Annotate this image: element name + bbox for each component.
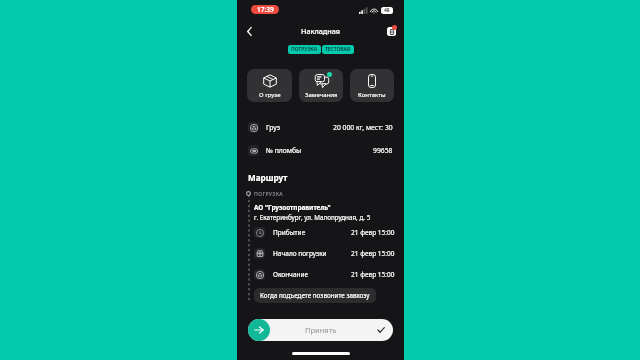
- staticText: Контакты: [358, 91, 386, 99]
- staticText: 17:39: [257, 5, 274, 14]
- staticText: 21 февр 15:00: [351, 270, 395, 279]
- staticText: 99658: [373, 146, 393, 155]
- button[interactable]: Прибытие: [237, 222, 404, 243]
- staticText: Когда подъедете позвоните завхозу: [260, 291, 370, 300]
- staticText: Начало погрузки: [273, 249, 327, 258]
- button[interactable]: Document: [384, 24, 398, 38]
- staticText: Накладная: [301, 26, 341, 36]
- button[interactable]: № пломбы: [237, 142, 404, 158]
- staticText: О грузе: [259, 91, 281, 99]
- staticText: Принять: [305, 325, 337, 335]
- button[interactable]: Swipe to accept: [248, 319, 270, 341]
- staticText: Прибытие: [273, 228, 306, 237]
- button[interactable]: Принять: [248, 319, 393, 341]
- button[interactable]: Окончание: [237, 264, 404, 285]
- staticText: 20 000 кг, мест: 30: [333, 123, 393, 132]
- button[interactable]: О грузе: [247, 69, 292, 102]
- staticText: Маршрут: [248, 172, 288, 183]
- staticText: 48: [384, 7, 390, 14]
- button[interactable]: Начало погрузки: [237, 243, 404, 264]
- staticText: 21 февр 15:00: [351, 249, 395, 258]
- staticText: Груз: [266, 123, 280, 132]
- staticText: 21 февр 15:00: [351, 228, 395, 237]
- button[interactable]: ПОГРУЗКА: [288, 45, 321, 54]
- staticText: ТЕСТОВАЯ: [325, 46, 351, 53]
- staticText: АО "Грузоотправитель": [254, 203, 331, 212]
- staticText: ПОГРУЗКА: [254, 190, 284, 197]
- button[interactable]: Груз: [237, 119, 404, 135]
- staticText: г. Екатеринбург, ул. Малопрудная, д. 5: [254, 213, 371, 222]
- button[interactable]: Замечания: [299, 69, 343, 102]
- button[interactable]: Контакты: [350, 69, 394, 102]
- staticText: № пломбы: [266, 146, 302, 155]
- staticText: Замечания: [305, 91, 338, 99]
- button[interactable]: ТЕСТОВАЯ: [322, 45, 354, 54]
- button[interactable]: Back: [242, 24, 256, 38]
- staticText: ПОГРУЗКА: [291, 46, 318, 53]
- staticText: Окончание: [273, 270, 309, 279]
